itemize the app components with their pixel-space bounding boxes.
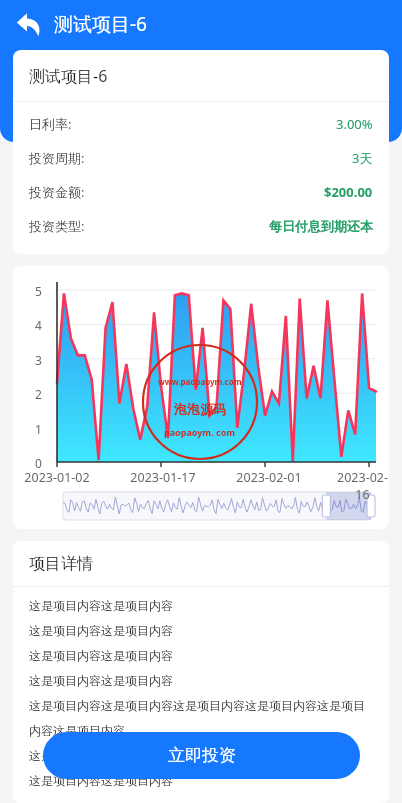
staticText: 2023-01-17 [123,469,203,486]
staticText: 2023-02-01 [229,469,309,486]
staticText: 项目详情 [29,554,93,574]
button[interactable]: 立即投资 [43,732,360,779]
staticText: 2023-01-02 [17,469,97,486]
staticText: www.paopaoym.com [158,376,242,387]
staticText: 3 [35,352,42,368]
staticText: 立即投资 [168,745,236,766]
staticText: 这是项目内容这是项目内容 [29,598,173,613]
staticText: $200.00 [324,183,373,201]
staticText: 每日付息到期还本 [269,218,373,234]
staticText: 这是项目内容这是项目内容这是项目内容这是项目内容这是项目 [29,698,365,713]
staticText: 2023-02-16 [336,469,389,503]
staticText: 内容这是项目内容 [29,723,125,738]
staticText: 投资金额: [29,183,85,201]
staticText: 这是项目内容这是项目内容 [29,648,173,663]
staticText: 这是项目内容这是项目内容 [29,773,173,788]
staticText: 投资类型: [29,217,85,235]
staticText: 测试项目-6 [54,11,147,37]
staticText: 1 [35,421,42,437]
staticText: paopaoym. com [164,426,236,438]
staticText: 3天 [352,149,373,167]
staticText: 这是项目内容这是项目内容 [29,673,173,688]
staticText: 3.00% [336,115,373,133]
staticText: 0 [35,455,42,471]
staticText: 5 [35,283,42,299]
staticText: 这是项目内容这是项目内容 [29,748,173,763]
staticText: 投资周期: [29,149,85,167]
staticText: 泡泡源码 [174,401,226,417]
button[interactable]: Back [8,4,48,44]
staticText: 2 [35,386,42,402]
staticText: 这是项目内容这是项目内容 [29,623,173,638]
staticText: 4 [35,317,42,333]
staticText: 测试项目-6 [29,65,108,87]
staticText: 日利率: [29,115,72,133]
